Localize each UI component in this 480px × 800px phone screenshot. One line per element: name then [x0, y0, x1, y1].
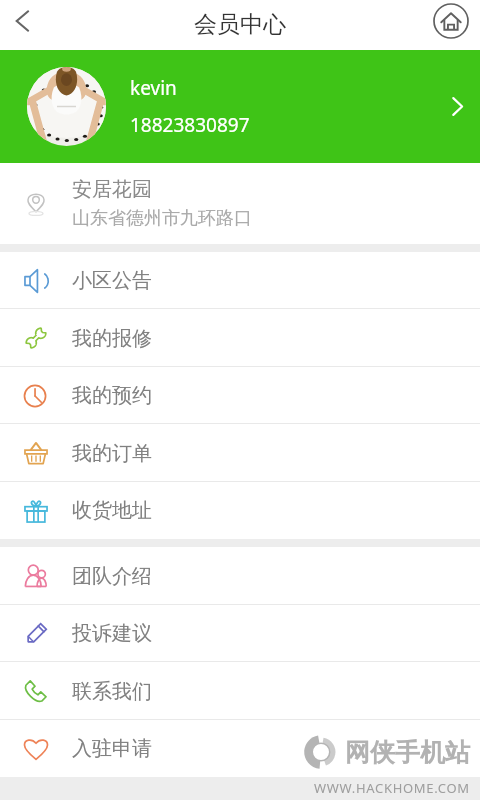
- staticText: 投诉建议: [72, 621, 152, 646]
- button[interactable]: kevin: [0, 50, 480, 163]
- staticText: 收货地址: [72, 498, 152, 523]
- staticText: 我的预约: [72, 383, 152, 408]
- button[interactable]: 联系我们: [0, 662, 480, 720]
- button[interactable]: 团队介绍: [0, 547, 480, 605]
- staticText: 入驻申请: [72, 736, 152, 761]
- staticText: 会员中心: [194, 10, 286, 39]
- button[interactable]: 投诉建议: [0, 605, 480, 662]
- button[interactable]: 我的报修: [0, 309, 480, 367]
- staticText: 我的报修: [72, 326, 152, 351]
- staticText: 网侠手机站: [345, 737, 470, 768]
- staticText: WWW.HACKHOME.COM: [314, 779, 470, 797]
- button[interactable]: 我的预约: [0, 367, 480, 424]
- staticText: 18823830897: [130, 112, 250, 138]
- staticText: 联系我们: [72, 679, 152, 704]
- button[interactable]: 小区公告: [0, 252, 480, 309]
- button[interactable]: 我的订单: [0, 424, 480, 482]
- staticText: 安居花园: [72, 177, 152, 202]
- button[interactable]: 收货地址: [0, 482, 480, 539]
- staticText: kevin: [130, 75, 177, 101]
- staticText: 山东省德州市九环路口: [72, 207, 252, 230]
- button[interactable]: 入驻申请: [0, 720, 480, 777]
- button[interactable]: Back: [0, 0, 44, 44]
- button[interactable]: Home: [432, 2, 470, 40]
- staticText: 我的订单: [72, 441, 152, 466]
- staticText: 团队介绍: [72, 564, 152, 589]
- staticText: 小区公告: [72, 268, 152, 293]
- button[interactable]: 安居花园: [0, 163, 480, 244]
